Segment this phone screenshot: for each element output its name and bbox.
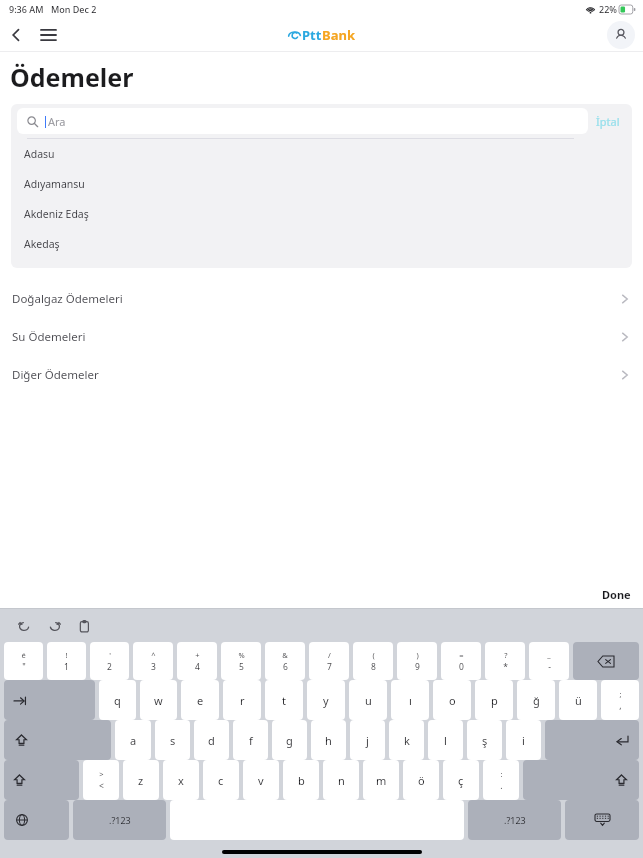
button[interactable]: _	[529, 642, 569, 680]
staticText: !	[65, 650, 68, 660]
button[interactable]: u	[349, 680, 387, 720]
button[interactable]: '	[90, 642, 129, 680]
button[interactable]: Return	[545, 720, 639, 760]
staticText: 6	[283, 661, 288, 673]
button[interactable]: Hide keyboard	[565, 800, 639, 840]
button[interactable]: m	[363, 760, 399, 800]
button[interactable]: >	[83, 760, 119, 800]
staticText: n	[338, 773, 345, 788]
button[interactable]: =	[441, 642, 481, 680]
staticText: +	[195, 650, 200, 660]
staticText: İptal	[596, 114, 620, 129]
button[interactable]: Paste	[74, 616, 94, 636]
button[interactable]: Account	[607, 21, 635, 49]
button[interactable]: Su Ödemeleri	[0, 318, 643, 356]
button[interactable]: Done	[590, 582, 643, 607]
staticText: 1	[64, 661, 69, 673]
button[interactable]: f	[233, 720, 268, 760]
staticText: _	[547, 650, 551, 660]
button[interactable]: ?	[485, 642, 525, 680]
button[interactable]: &	[265, 642, 305, 680]
button[interactable]: !	[47, 642, 86, 680]
staticText: o	[449, 693, 456, 708]
staticText: c	[218, 773, 224, 788]
button[interactable]: é	[4, 642, 43, 680]
button[interactable]: s	[155, 720, 190, 760]
button[interactable]: Undo	[14, 616, 34, 636]
button[interactable]: z	[123, 760, 159, 800]
button[interactable]: Change language	[4, 800, 69, 840]
button[interactable]: ;	[601, 680, 639, 720]
staticText: .?123	[109, 814, 131, 826]
button[interactable]: g	[272, 720, 307, 760]
staticText: Ödemeler	[10, 60, 134, 94]
staticText: e	[197, 693, 204, 708]
button[interactable]: /	[309, 642, 349, 680]
button[interactable]: Adasu	[11, 139, 632, 169]
button[interactable]: y	[307, 680, 345, 720]
staticText: Doğalgaz Ödemeleri	[12, 291, 123, 307]
staticText: Akdeniz Edaş	[24, 207, 89, 221]
button[interactable]: Numbers	[73, 800, 166, 840]
button[interactable]: Adıyamansu	[11, 169, 632, 199]
button[interactable]: ş	[467, 720, 502, 760]
button[interactable]: r	[223, 680, 261, 720]
button[interactable]: :	[483, 760, 519, 800]
button[interactable]: w	[140, 680, 177, 720]
button[interactable]: Numbers	[468, 800, 561, 840]
button[interactable]: Shift	[4, 720, 111, 760]
button[interactable]: d	[194, 720, 229, 760]
button[interactable]: v	[243, 760, 279, 800]
button[interactable]: x	[163, 760, 199, 800]
button[interactable]: Backspace	[573, 642, 639, 680]
button[interactable]: ç	[443, 760, 479, 800]
staticText: b	[298, 773, 305, 788]
button[interactable]: Menu	[32, 19, 64, 51]
staticText: r	[240, 693, 245, 708]
button[interactable]: a	[115, 720, 151, 760]
staticText: ,	[619, 700, 622, 712]
button[interactable]: ı	[391, 680, 429, 720]
button[interactable]: Diğer Ödemeler	[0, 356, 643, 394]
button[interactable]: (	[353, 642, 393, 680]
button[interactable]: ^	[133, 642, 173, 680]
button[interactable]: h	[311, 720, 346, 760]
button[interactable]: Shift	[523, 760, 639, 800]
staticText: 4	[195, 661, 200, 673]
button[interactable]: Back	[0, 19, 32, 51]
button[interactable]: ö	[403, 760, 439, 800]
button[interactable]: i	[506, 720, 541, 760]
staticText: f	[249, 733, 253, 748]
staticText: Ara	[48, 114, 66, 129]
button[interactable]: Shift	[4, 760, 79, 800]
button[interactable]: Redo	[44, 616, 64, 636]
button[interactable]: l	[428, 720, 463, 760]
button[interactable]: Tab	[4, 680, 95, 720]
button[interactable]: Akedaş	[11, 229, 632, 259]
staticText: x	[178, 773, 184, 788]
button[interactable]: Akdeniz Edaş	[11, 199, 632, 229]
staticText: q	[114, 693, 121, 708]
button[interactable]: j	[350, 720, 385, 760]
button[interactable]: e	[181, 680, 219, 720]
button[interactable]: )	[397, 642, 437, 680]
button[interactable]: t	[265, 680, 303, 720]
button[interactable]: ü	[559, 680, 597, 720]
staticText: i	[522, 733, 525, 748]
button[interactable]: q	[99, 680, 136, 720]
button[interactable]: ğ	[517, 680, 555, 720]
button[interactable]: +	[177, 642, 217, 680]
button[interactable]: %	[221, 642, 261, 680]
button[interactable]: n	[323, 760, 359, 800]
button[interactable]: p	[475, 680, 513, 720]
staticText: %	[238, 650, 245, 660]
staticText: l	[444, 733, 447, 748]
button[interactable]: İptal	[588, 110, 628, 133]
button[interactable]: Doğalgaz Ödemeleri	[0, 280, 643, 318]
button[interactable]: c	[203, 760, 239, 800]
button[interactable]: b	[283, 760, 319, 800]
button[interactable]: Ara	[17, 108, 588, 134]
button[interactable]: o	[433, 680, 471, 720]
button[interactable]: k	[389, 720, 424, 760]
